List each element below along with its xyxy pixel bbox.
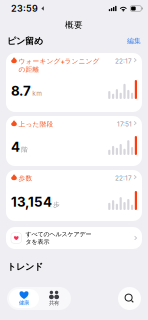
- button[interactable]: 編集: [127, 37, 141, 45]
- staticText: 編集: [127, 37, 141, 45]
- staticText: 概要: [65, 20, 83, 30]
- staticText: すべてのヘルスケアデータを表示: [25, 230, 91, 245]
- staticText: 健康: [19, 299, 29, 306]
- staticText: 階: [21, 146, 27, 154]
- staticText: 歩: [53, 201, 59, 209]
- staticText: 13,154: [11, 194, 52, 210]
- button[interactable]: 上った階段: [6, 116, 142, 166]
- staticText: トレンド: [7, 261, 43, 272]
- staticText: 4: [11, 139, 20, 155]
- staticText: 歩数: [19, 174, 33, 182]
- button[interactable]: ウォーキング+ランニングの距離: [6, 53, 142, 112]
- staticText: ウォーキング+ランニングの距離: [19, 57, 100, 74]
- button[interactable]: Search: [118, 287, 141, 310]
- staticText: 17:51: [117, 120, 132, 128]
- staticText: 22:17: [115, 57, 132, 65]
- button[interactable]: すべてのヘルスケアデータを表示: [6, 227, 142, 249]
- staticText: 22:17: [115, 174, 132, 182]
- button[interactable]: 健康: [9, 289, 39, 308]
- staticText: 上った階段: [19, 120, 54, 128]
- staticText: 23:59: [11, 3, 38, 14]
- staticText: 共有: [49, 299, 59, 306]
- button[interactable]: 歩数: [6, 170, 142, 221]
- staticText: km: [32, 90, 42, 97]
- button[interactable]: 共有: [39, 289, 69, 308]
- staticText: 8.7: [11, 83, 31, 99]
- staticText: ピン留め: [7, 35, 43, 47]
